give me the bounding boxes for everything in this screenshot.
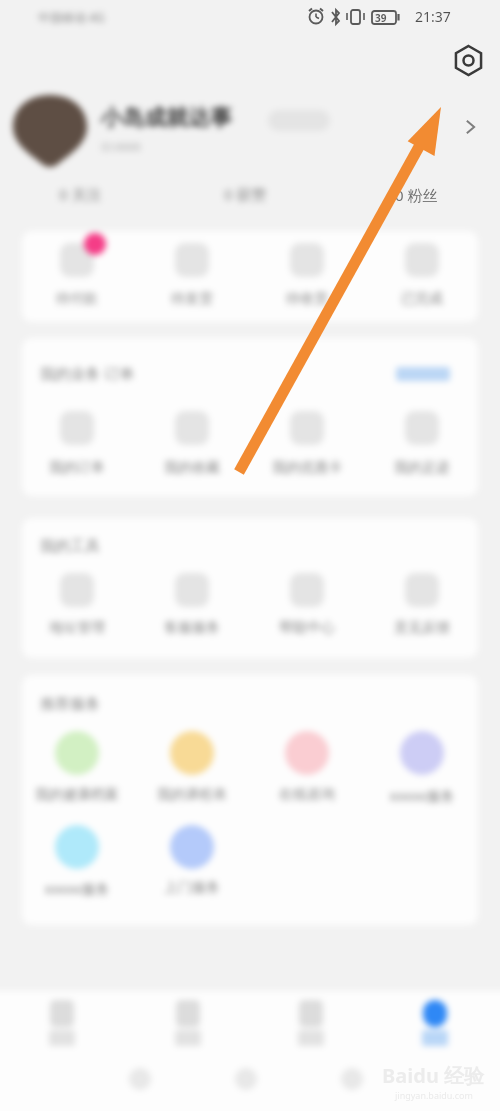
staticText: 帮助中心 xyxy=(279,619,335,637)
button[interactable]: System navigation xyxy=(129,1068,151,1090)
button[interactable]: System navigation xyxy=(235,1068,257,1090)
staticText: 推荐服务 xyxy=(40,695,100,714)
button[interactable]: 帮助中心 xyxy=(250,567,364,637)
staticText: ID:8888 xyxy=(101,139,141,154)
staticText: 待付款 xyxy=(56,290,98,308)
button[interactable]: Profile detail xyxy=(458,114,484,140)
staticText: 21:37 xyxy=(415,7,451,26)
button[interactable]: 待付款 xyxy=(20,237,134,308)
button[interactable]: 我的收藏 xyxy=(135,405,249,477)
button[interactable]: 我的优惠卡 xyxy=(250,405,364,477)
button[interactable]: 我的健康档案 xyxy=(20,725,134,804)
staticText: 小岛成就达事 xyxy=(100,104,232,132)
staticText: xxxxx服务 xyxy=(44,879,110,898)
button[interactable]: xxxxx服务 xyxy=(365,725,479,805)
button[interactable]: 已完成 xyxy=(365,237,479,308)
button[interactable]: 在线咨询 xyxy=(250,725,364,804)
button[interactable]: 资讯 xyxy=(138,1000,238,1046)
staticText: 我的足迹 xyxy=(394,459,450,477)
staticText: Baidu 经验 xyxy=(382,1062,485,1089)
staticText: 上门服务 xyxy=(164,879,220,897)
staticText: jingyan.baidu.com xyxy=(395,1089,473,1101)
staticText: 我的收藏 xyxy=(164,459,220,477)
staticText: 我的业务 订单 xyxy=(40,363,134,383)
button[interactable]: 0 粉丝 xyxy=(395,184,438,206)
button[interactable]: 待收货 xyxy=(250,237,364,308)
button[interactable]: Avatar xyxy=(10,92,90,172)
staticText: 待收货 xyxy=(286,290,328,308)
button[interactable]: 我的 xyxy=(385,1000,485,1046)
staticText: 0 粉丝 xyxy=(395,185,438,205)
button[interactable]: 我的课程表 xyxy=(135,725,249,804)
button[interactable]: 上门服务 xyxy=(135,819,249,897)
button[interactable]: xxxxx服务 xyxy=(20,819,134,898)
staticText: 地址管理 xyxy=(49,619,105,637)
button[interactable]: 我的足迹 xyxy=(365,405,479,477)
button[interactable]: 服务 xyxy=(261,1000,361,1046)
staticText: 我的课程表 xyxy=(157,786,227,804)
button[interactable]: View more xyxy=(396,367,450,381)
button[interactable]: 首页 xyxy=(12,1000,112,1046)
button[interactable]: Settings xyxy=(448,40,489,81)
button[interactable]: 地址管理 xyxy=(20,567,134,637)
button[interactable]: 待发货 xyxy=(135,237,249,308)
staticText: 0 关注 xyxy=(59,184,102,204)
staticText: 0 获赞 xyxy=(224,184,267,204)
staticText: 在线咨询 xyxy=(279,786,335,804)
staticText: 39 xyxy=(375,11,387,25)
staticText: 我的健康档案 xyxy=(35,786,119,804)
staticText: xxxxx服务 xyxy=(389,786,455,805)
button[interactable]: 客服服务 xyxy=(135,567,249,637)
staticText: 已完成 xyxy=(401,290,443,308)
staticText: 客服服务 xyxy=(164,619,220,637)
button[interactable]: 意见反馈 xyxy=(365,567,479,637)
staticText: 意见反馈 xyxy=(394,619,450,637)
staticText: 我的优惠卡 xyxy=(272,459,342,477)
button[interactable]: 0 关注 xyxy=(40,183,120,205)
button[interactable]: 我的订单 xyxy=(20,405,134,477)
staticText: 我的工具 xyxy=(40,537,100,556)
staticText: 中国移动 4G xyxy=(38,9,105,25)
staticText: 待发货 xyxy=(171,290,213,308)
button[interactable]: 0 获赞 xyxy=(205,183,285,205)
staticText: 我的订单 xyxy=(49,459,105,477)
button[interactable]: System navigation xyxy=(341,1068,363,1090)
